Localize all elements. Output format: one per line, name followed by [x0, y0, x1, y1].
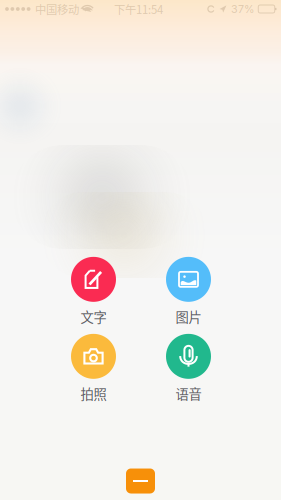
staticText: 语音	[175, 384, 201, 403]
button[interactable]: 文字	[55, 257, 131, 325]
button[interactable]: 语音	[150, 334, 226, 402]
staticText: 图片	[175, 307, 201, 326]
button[interactable]: 图片	[150, 257, 226, 325]
button[interactable]: 关闭	[126, 468, 155, 493]
staticText: 37%	[231, 2, 254, 15]
staticText: 文字	[80, 307, 106, 326]
button[interactable]: 拍照	[55, 334, 131, 402]
staticText: 拍照	[80, 384, 106, 403]
staticText: 下午11:54	[114, 1, 163, 17]
staticText: 中国移动	[35, 1, 79, 17]
